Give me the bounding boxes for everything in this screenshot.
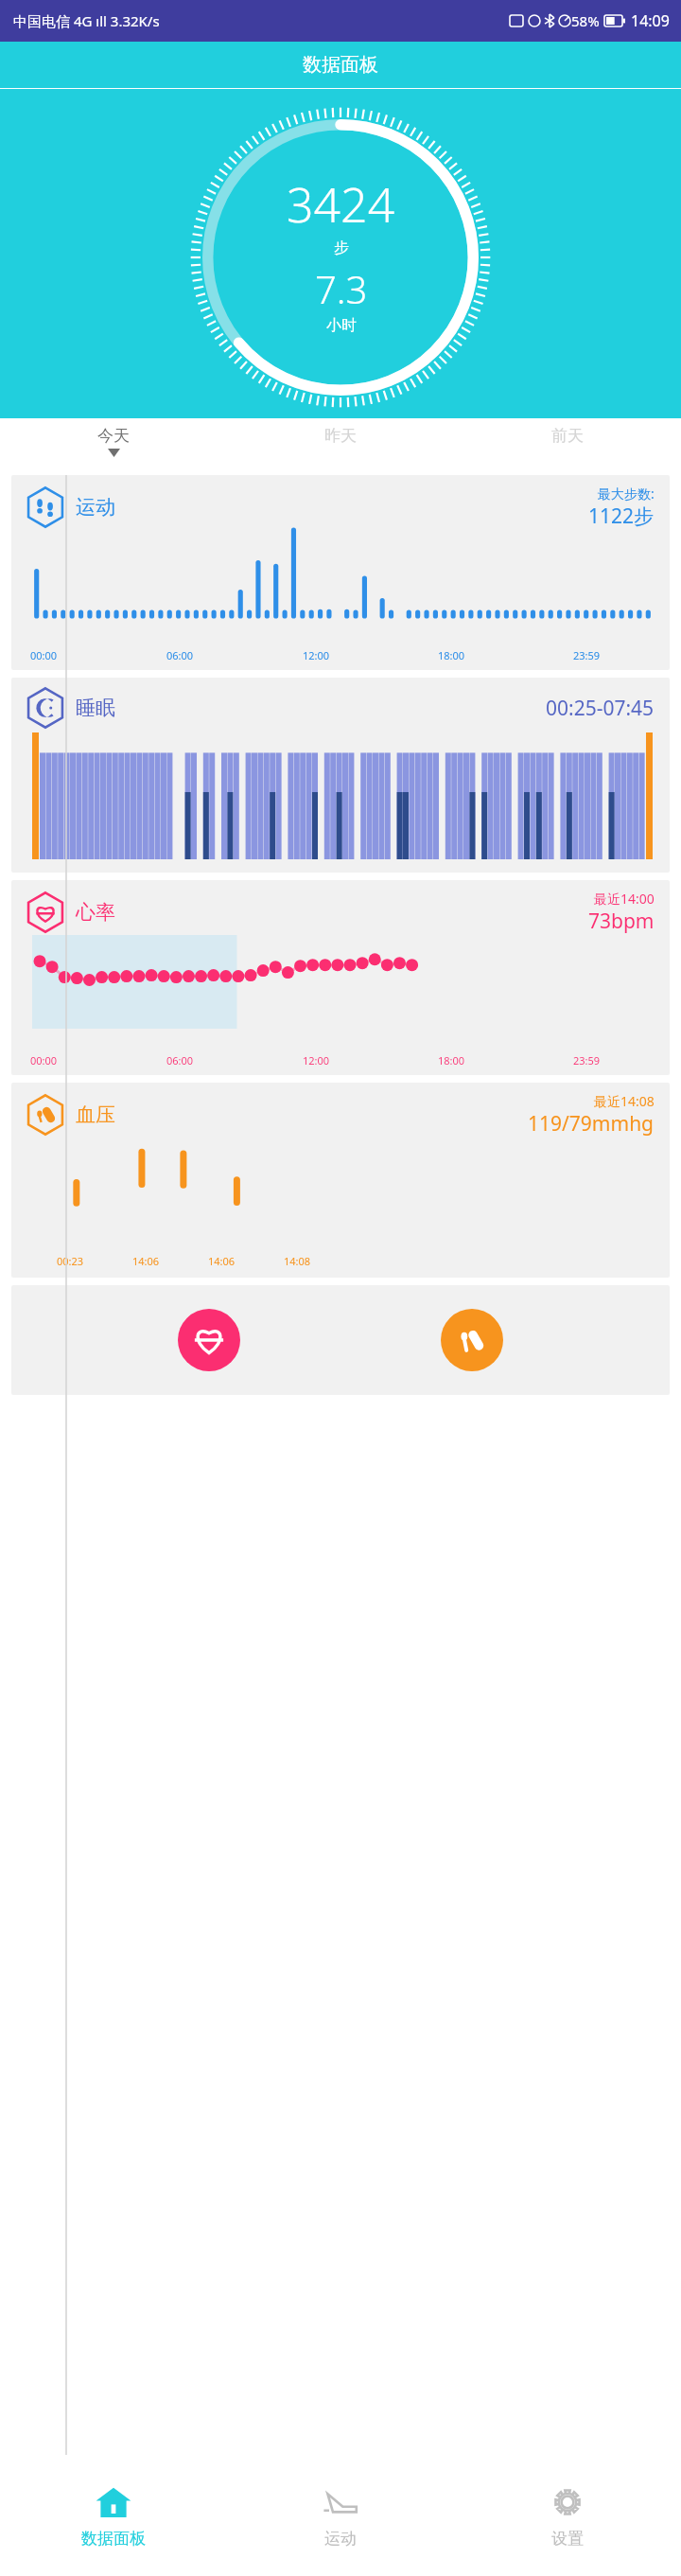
- staticText: 步: [334, 238, 349, 257]
- staticText: 小时: [326, 316, 357, 335]
- staticText: 00:00: [30, 1053, 166, 1067]
- button[interactable]: 心率: [11, 880, 670, 1075]
- staticText: 数据面板: [81, 2529, 146, 2549]
- staticText: 00:23: [57, 1254, 132, 1268]
- staticText: 前天: [551, 426, 584, 446]
- staticText: 12:00: [303, 648, 438, 662]
- staticText: 最大步数:: [598, 485, 655, 503]
- staticText: 睡眠: [76, 696, 115, 720]
- button[interactable]: 设置: [454, 2455, 681, 2576]
- button[interactable]: 血压: [11, 1083, 670, 1278]
- staticText: 06:00: [166, 648, 303, 662]
- staticText: 中国电信 4G ıll 3.32K/s: [13, 11, 160, 30]
- button[interactable]: Measure blood pressure: [441, 1309, 503, 1371]
- staticText: 血压: [76, 1103, 115, 1127]
- staticText: 最近14:00: [594, 890, 655, 908]
- staticText: 18:00: [438, 648, 573, 662]
- staticText: 昨天: [324, 426, 357, 446]
- staticText: 今天: [97, 426, 130, 446]
- button[interactable]: 数据面板: [0, 2455, 227, 2576]
- button[interactable]: 今天: [0, 418, 227, 475]
- staticText: 14:08: [284, 1254, 359, 1268]
- staticText: 14:09: [631, 10, 670, 31]
- staticText: 12:00: [303, 1053, 438, 1067]
- staticText: 7.3: [315, 263, 368, 314]
- staticText: 58%: [571, 11, 600, 30]
- staticText: 心率: [76, 900, 115, 925]
- button[interactable]: Measure heart rate: [11, 1285, 670, 1395]
- staticText: 数据面板: [303, 53, 378, 77]
- staticText: 1122步: [588, 503, 655, 530]
- staticText: 119/79mmhg: [528, 1110, 655, 1138]
- staticText: 23:59: [573, 1053, 655, 1067]
- staticText: 设置: [551, 2529, 584, 2549]
- staticText: 18:00: [438, 1053, 573, 1067]
- staticText: 14:06: [132, 1254, 208, 1268]
- button[interactable]: 运动: [11, 475, 670, 670]
- staticText: 3424: [287, 172, 395, 237]
- staticText: 运动: [76, 495, 115, 520]
- button[interactable]: 睡眠: [11, 678, 670, 873]
- button[interactable]: Measure heart rate: [178, 1309, 240, 1371]
- staticText: 73bpm: [588, 908, 655, 935]
- staticText: 00:00: [30, 648, 166, 662]
- button[interactable]: 昨天: [227, 418, 454, 475]
- staticText: 23:59: [573, 648, 655, 662]
- staticText: 运动: [324, 2529, 357, 2549]
- staticText: 14:06: [208, 1254, 284, 1268]
- button[interactable]: 运动: [227, 2455, 454, 2576]
- staticText: 06:00: [166, 1053, 303, 1067]
- button[interactable]: 前天: [454, 418, 681, 475]
- staticText: 00:25-07:45: [546, 695, 655, 722]
- staticText: 最近14:08: [594, 1092, 655, 1110]
